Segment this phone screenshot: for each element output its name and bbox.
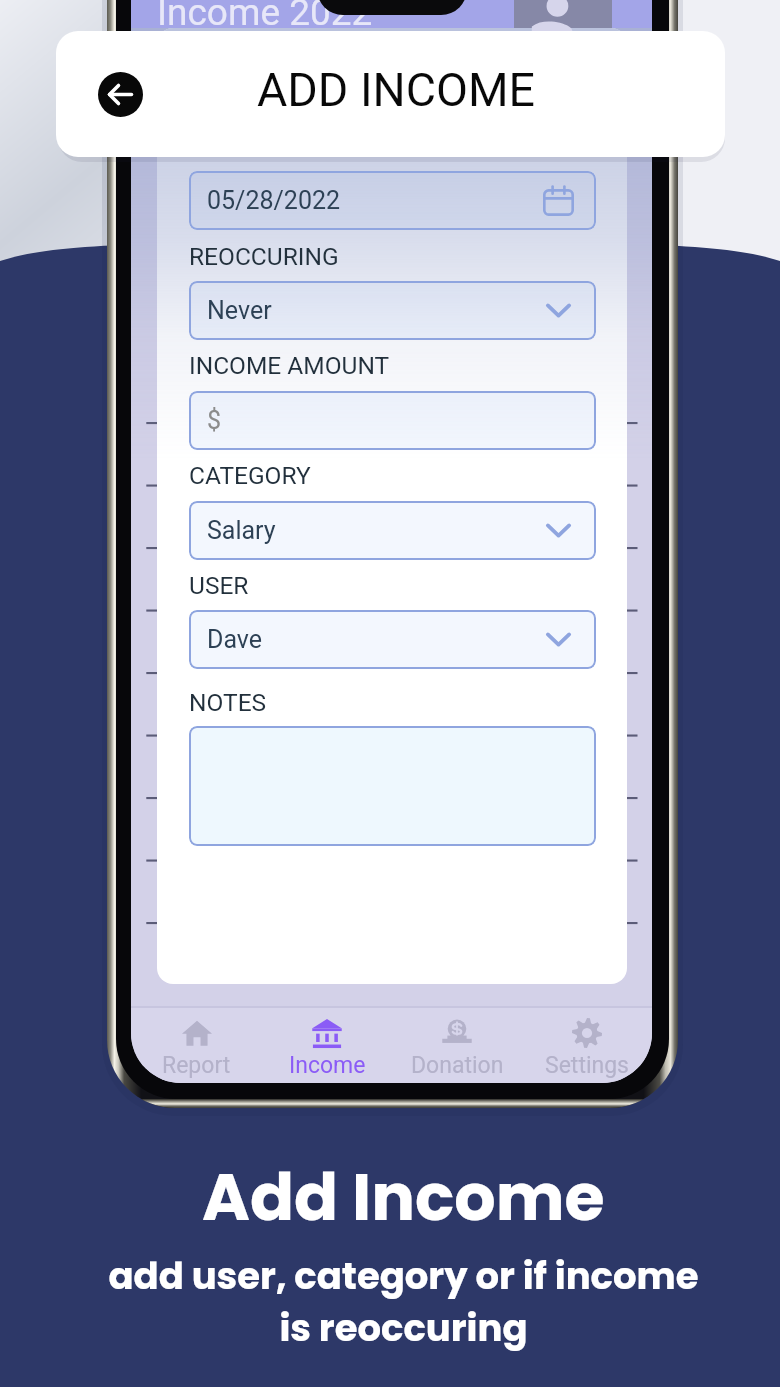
staticText: add user, category or if income is reocc…	[108, 1250, 699, 1354]
staticText: Income	[289, 1052, 366, 1079]
staticText: REOCCURING	[189, 242, 339, 271]
staticText: Salary	[207, 516, 276, 545]
staticText: Donation	[411, 1052, 504, 1079]
staticText: Report	[162, 1052, 231, 1079]
staticText: INCOME AMOUNT	[189, 351, 390, 380]
button[interactable]: Settings	[522, 1008, 652, 1083]
staticText: USER	[189, 571, 249, 600]
button[interactable]: Back	[98, 72, 143, 117]
button[interactable]: Dave	[189, 610, 596, 669]
staticText: ADD INCOME	[257, 63, 536, 117]
staticText: Settings	[545, 1052, 629, 1079]
button[interactable]: Donation	[392, 1008, 522, 1083]
staticText: Add Income	[202, 1152, 605, 1243]
staticText: Dave	[207, 625, 263, 654]
button[interactable]: Never	[189, 281, 596, 340]
button[interactable]: 05/28/2022	[189, 171, 596, 230]
staticText: CATEGORY	[189, 461, 311, 490]
staticText: Never	[207, 296, 272, 325]
staticText: NOTES	[189, 688, 267, 717]
button[interactable]	[189, 726, 596, 846]
button[interactable]: Report	[131, 1008, 262, 1083]
button[interactable]: $	[189, 391, 596, 450]
staticText: $	[207, 406, 222, 435]
staticText: 05/28/2022	[207, 186, 341, 215]
button[interactable]: Salary	[189, 501, 596, 560]
button[interactable]: Income	[262, 1008, 392, 1083]
staticText: Income 2022	[157, 0, 373, 34]
